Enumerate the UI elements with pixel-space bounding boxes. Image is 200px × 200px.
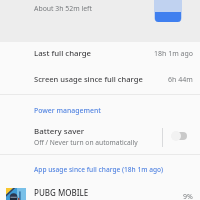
button[interactable]: PUBG MOBILE <box>0 181 200 200</box>
staticText: Screen usage since full charge <box>34 74 143 84</box>
staticText: 18h 1m ago <box>154 49 193 59</box>
button[interactable]: Last full charge <box>0 40 200 66</box>
staticText: Off / Never turn on automatically <box>34 138 138 147</box>
staticText: Power management <box>34 106 101 115</box>
button[interactable]: Screen usage since full charge <box>0 66 200 92</box>
staticText: About 3h 52m left <box>34 4 92 13</box>
button[interactable]: Battery saver switch, off <box>166 120 194 152</box>
button[interactable]: App usage since full charge (18h 1m ago) <box>0 160 200 179</box>
button[interactable]: Battery saver <box>0 120 158 152</box>
staticText: Battery saver <box>34 126 85 137</box>
staticText: PUBG MOBILE <box>34 187 89 198</box>
staticText: 9% <box>183 192 193 200</box>
staticText: App usage since full charge (18h 1m ago) <box>34 165 164 174</box>
button[interactable]: Power management <box>0 100 200 120</box>
staticText: 6h 44m <box>168 75 193 85</box>
staticText: Last full charge <box>34 48 92 59</box>
